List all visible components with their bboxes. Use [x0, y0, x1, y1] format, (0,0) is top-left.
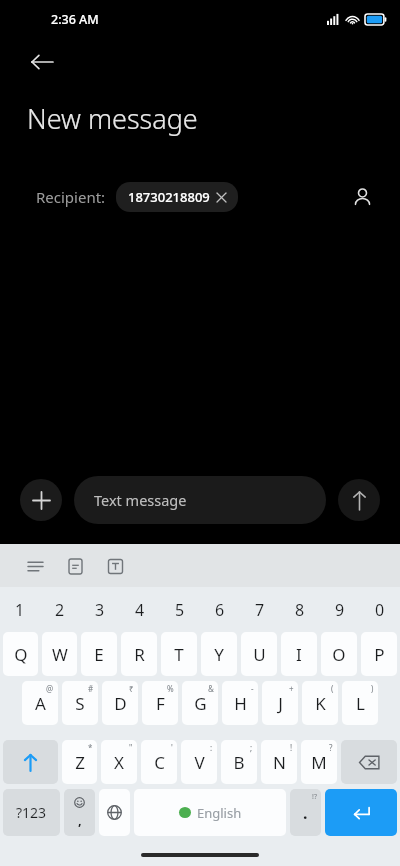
button[interactable]: 8	[280, 587, 320, 632]
button[interactable]: Y	[201, 632, 237, 676]
staticText: English	[197, 804, 242, 822]
button[interactable]: 3	[80, 587, 120, 632]
staticText: O	[332, 643, 346, 666]
button[interactable]: K	[302, 681, 338, 725]
staticText: B	[233, 751, 245, 774]
staticText: D	[114, 692, 127, 715]
staticText: P	[374, 643, 385, 666]
staticText: %	[167, 683, 174, 694]
button[interactable]: 5	[160, 587, 200, 632]
staticText: S	[75, 692, 85, 715]
button[interactable]: Q	[3, 632, 38, 676]
button[interactable]: F	[142, 681, 178, 725]
staticText: &	[208, 683, 214, 694]
button[interactable]: I	[281, 632, 317, 676]
button[interactable]: Menu	[20, 551, 50, 581]
button[interactable]: Attach	[20, 479, 62, 521]
button[interactable]: L	[342, 681, 378, 725]
button[interactable]: 4	[120, 587, 160, 632]
button[interactable]: Clipboard	[60, 551, 90, 581]
button[interactable]: J	[262, 681, 298, 725]
staticText: New message	[27, 100, 198, 137]
button[interactable]: Text style	[100, 551, 130, 581]
button[interactable]: Emoji and comma	[64, 789, 95, 836]
button[interactable]: N	[261, 740, 297, 784]
staticText: (	[331, 683, 334, 694]
button[interactable]: E	[81, 632, 117, 676]
staticText: C	[154, 751, 165, 774]
button[interactable]: V	[181, 740, 217, 784]
button[interactable]: H	[222, 681, 258, 725]
staticText: H	[234, 692, 247, 715]
staticText: N	[273, 751, 286, 774]
staticText: U	[253, 643, 266, 666]
button[interactable]: Z	[62, 740, 97, 784]
button[interactable]: 6	[200, 587, 240, 632]
button[interactable]: U	[241, 632, 277, 676]
button[interactable]: Enter	[325, 789, 397, 836]
staticText: )	[371, 683, 374, 694]
button[interactable]: Shift	[3, 740, 58, 784]
button[interactable]: B	[221, 740, 257, 784]
staticText: 7	[255, 599, 265, 621]
staticText: W	[52, 643, 68, 666]
staticText: T	[174, 643, 184, 666]
button[interactable]: ?123	[3, 789, 60, 836]
button[interactable]: S	[62, 681, 98, 725]
staticText: F	[156, 692, 165, 715]
button[interactable]: Change language	[99, 789, 130, 836]
staticText: Y	[214, 643, 224, 666]
staticText: 8	[295, 599, 305, 621]
staticText: 9	[335, 599, 345, 621]
button[interactable]: C	[141, 740, 177, 784]
button[interactable]: A	[22, 681, 58, 725]
button[interactable]: 7	[240, 587, 280, 632]
button[interactable]: R	[121, 632, 157, 676]
staticText: 2	[55, 599, 65, 621]
button[interactable]: P	[361, 632, 397, 676]
button[interactable]: M	[301, 740, 337, 784]
staticText: L	[356, 692, 365, 715]
staticText: Recipient:	[36, 187, 106, 207]
button[interactable]: O	[321, 632, 357, 676]
button[interactable]: 2	[40, 587, 80, 632]
button[interactable]: .	[290, 789, 321, 836]
button[interactable]: W	[42, 632, 77, 676]
staticText: K	[315, 692, 326, 715]
staticText: G	[194, 692, 207, 715]
button[interactable]: Send	[338, 479, 380, 521]
staticText: 3	[95, 599, 105, 621]
staticText: '	[171, 742, 173, 753]
button[interactable]: 1	[0, 587, 40, 632]
button[interactable]: 18730218809	[116, 182, 238, 212]
button[interactable]: X	[101, 740, 137, 784]
button[interactable]: 9	[320, 587, 360, 632]
staticText: @	[46, 683, 54, 694]
staticText: -	[251, 683, 254, 694]
staticText: *	[88, 742, 93, 753]
staticText: Text message	[94, 490, 187, 510]
staticText: 1	[15, 599, 25, 621]
button[interactable]: English	[134, 789, 286, 836]
button[interactable]: D	[102, 681, 138, 725]
staticText: +	[289, 683, 294, 694]
staticText: #	[88, 683, 94, 694]
staticText: ?123	[16, 803, 47, 822]
button[interactable]: Contacts	[342, 177, 382, 217]
button[interactable]: Backspace	[341, 740, 397, 784]
staticText: V	[194, 751, 205, 774]
staticText: 6	[215, 599, 225, 621]
button[interactable]: G	[182, 681, 218, 725]
button[interactable]: Back	[18, 38, 66, 86]
staticText: !?	[312, 792, 317, 802]
staticText: !	[290, 742, 293, 753]
staticText: Q	[14, 643, 28, 666]
staticText: 5	[175, 599, 185, 621]
staticText: ;	[250, 742, 253, 753]
staticText: "	[129, 742, 133, 753]
button[interactable]: 0	[360, 587, 400, 632]
staticText: 0	[375, 599, 385, 621]
staticText: :	[210, 742, 213, 753]
button[interactable]: T	[161, 632, 197, 676]
button[interactable]: Text message	[74, 476, 326, 524]
